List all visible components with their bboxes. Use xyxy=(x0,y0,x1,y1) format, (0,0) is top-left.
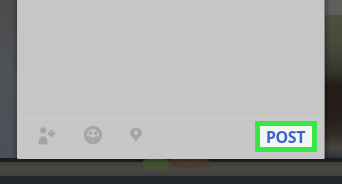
button[interactable]: Tag people xyxy=(29,118,63,152)
button[interactable]: Check in xyxy=(119,118,153,152)
staticText: POST xyxy=(266,126,306,147)
button[interactable]: Feeling xyxy=(76,118,110,152)
button[interactable]: POST xyxy=(255,121,317,152)
